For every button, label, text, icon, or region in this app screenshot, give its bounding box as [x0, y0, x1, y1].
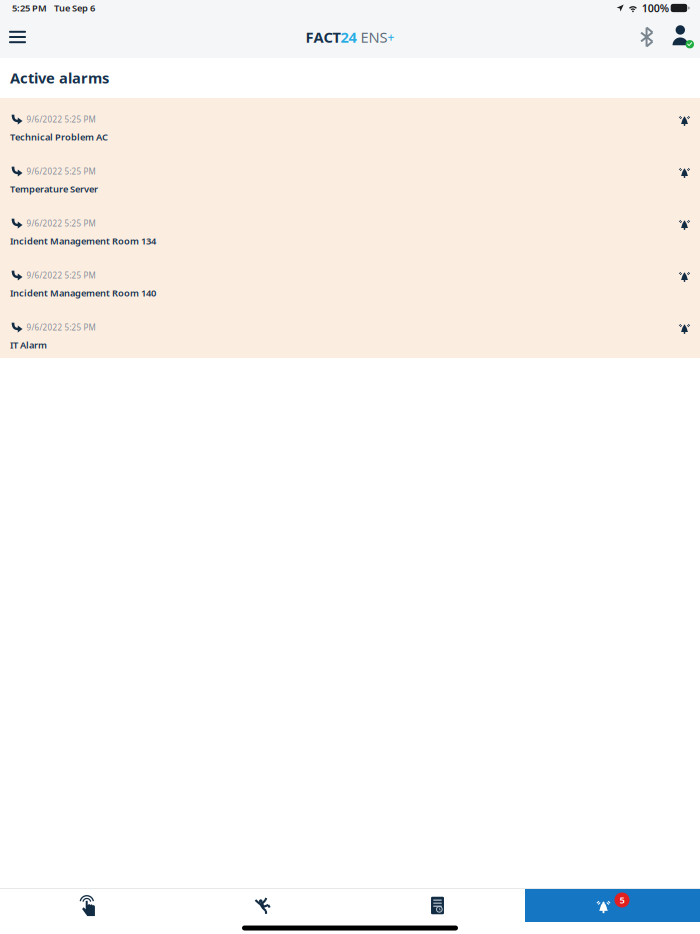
button[interactable]: Active alarms: [525, 889, 700, 922]
staticText: Incident Management Room 140: [10, 287, 156, 299]
staticText: Temperature Server: [10, 183, 98, 195]
staticText: +: [387, 29, 394, 45]
staticText: 5:25 PM: [12, 2, 47, 14]
button[interactable]: Account: [661, 20, 700, 54]
staticText: 100%: [642, 1, 669, 15]
button[interactable]: 9/6/2022 5:25 PM: [0, 150, 700, 202]
staticText: FACT: [305, 27, 340, 47]
staticText: IT Alarm: [10, 339, 47, 351]
button[interactable]: 9/6/2022 5:25 PM: [0, 254, 700, 306]
staticText: Incident Management Room 134: [10, 235, 156, 247]
staticText: Technical Problem AC: [10, 131, 108, 143]
button[interactable]: Bluetooth: [632, 20, 661, 53]
staticText: Tue Sep 6: [54, 2, 95, 14]
button[interactable]: Manual alert: [0, 889, 175, 922]
button[interactable]: Person down alarm: [175, 889, 350, 922]
staticText: 5: [619, 894, 624, 906]
staticText: 9/6/2022 5:25 PM: [26, 322, 95, 333]
staticText: Active alarms: [10, 68, 109, 87]
staticText: 24: [340, 27, 356, 47]
button[interactable]: Alarm log: [350, 889, 525, 922]
button[interactable]: Menu: [0, 22, 40, 52]
button[interactable]: 9/6/2022 5:25 PM: [0, 98, 700, 150]
button[interactable]: 9/6/2022 5:25 PM: [0, 202, 700, 254]
staticText: 9/6/2022 5:25 PM: [26, 270, 95, 281]
staticText: 9/6/2022 5:25 PM: [26, 218, 95, 229]
staticText: 9/6/2022 5:25 PM: [26, 166, 95, 177]
staticText: ENS: [356, 27, 387, 47]
button[interactable]: 9/6/2022 5:25 PM: [0, 306, 700, 358]
staticText: 9/6/2022 5:25 PM: [26, 114, 95, 125]
